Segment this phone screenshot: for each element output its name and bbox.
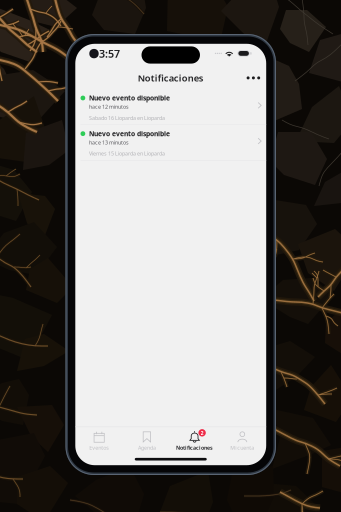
- staticText: Notificaciones: [176, 444, 213, 451]
- staticText: 2: [201, 429, 204, 436]
- button[interactable]: Nuevo evento disponible: [75, 125, 266, 161]
- button[interactable]: Agenda: [123, 427, 171, 453]
- staticText: Agenda: [138, 444, 156, 451]
- button[interactable]: More options: [242, 72, 265, 84]
- button[interactable]: Eventos: [75, 427, 123, 453]
- staticText: Eventos: [89, 444, 109, 451]
- button[interactable]: 2: [171, 427, 218, 453]
- staticText: hace 13 minutos: [89, 139, 129, 146]
- staticText: Notificaciones: [138, 72, 204, 84]
- staticText: Viernes 15 Lioparda en Lioparda: [89, 150, 165, 157]
- staticText: Nuevo evento disponible: [89, 94, 170, 102]
- staticText: 3:57: [99, 46, 120, 61]
- staticText: Mi cuenta: [230, 444, 254, 451]
- staticText: Sabado 16 Lioparda en Lioparda: [89, 114, 165, 121]
- button[interactable]: Nuevo evento disponible: [75, 89, 266, 125]
- staticText: hace 12 minutos: [89, 103, 129, 110]
- button[interactable]: Mi cuenta: [218, 427, 266, 453]
- staticText: Nuevo evento disponible: [89, 129, 170, 138]
